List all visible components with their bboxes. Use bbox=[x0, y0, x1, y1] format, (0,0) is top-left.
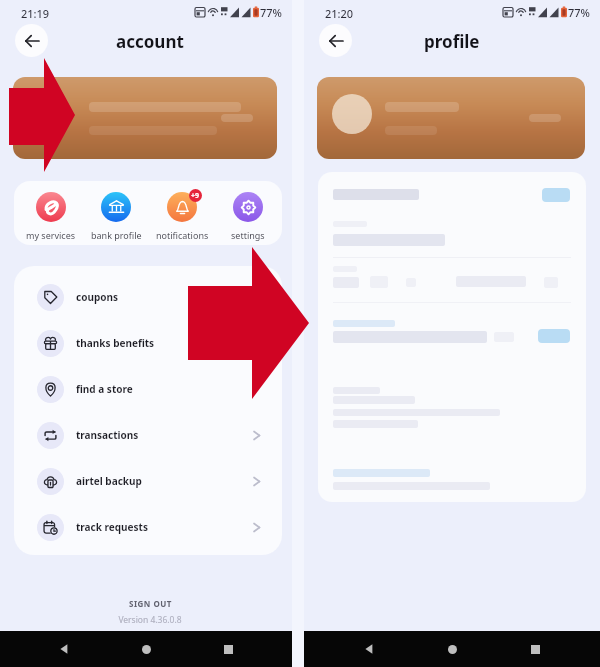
button[interactable] bbox=[13, 77, 277, 159]
button[interactable]: thanks benefits bbox=[14, 320, 282, 366]
button[interactable]: Back bbox=[351, 631, 387, 667]
staticText: 77% bbox=[260, 5, 282, 20]
button[interactable]: Back bbox=[46, 631, 82, 667]
staticText: my services bbox=[26, 229, 76, 241]
button[interactable]: track requests bbox=[14, 504, 282, 550]
button[interactable]: coupons bbox=[14, 274, 282, 320]
staticText: notifications bbox=[156, 229, 209, 241]
button[interactable]: find a store bbox=[14, 366, 282, 412]
staticText: track requests bbox=[76, 520, 148, 534]
staticText: coupons bbox=[76, 290, 118, 304]
button[interactable]: Back bbox=[15, 24, 48, 57]
button[interactable]: SIGN OUT bbox=[123, 597, 178, 610]
button[interactable]: Home bbox=[128, 631, 164, 667]
button[interactable]: my services bbox=[18, 181, 83, 245]
staticText: +9 bbox=[191, 191, 200, 201]
staticText: 21:19 bbox=[21, 6, 50, 21]
staticText: account bbox=[116, 30, 184, 53]
button[interactable]: transactions bbox=[14, 412, 282, 458]
staticText: Version 4.36.0.8 bbox=[118, 614, 182, 626]
staticText: profile bbox=[424, 30, 480, 53]
button[interactable]: bank profile bbox=[83, 181, 149, 245]
button[interactable]: +9 bbox=[149, 181, 215, 245]
button[interactable]: airtel backup bbox=[14, 458, 282, 504]
button[interactable] bbox=[317, 77, 585, 159]
staticText: thanks benefits bbox=[76, 336, 155, 350]
button[interactable]: Recents bbox=[210, 631, 246, 667]
button[interactable]: Back bbox=[319, 24, 352, 57]
staticText: SIGN OUT bbox=[129, 598, 172, 609]
staticText: 21:20 bbox=[325, 6, 354, 21]
staticText: bank profile bbox=[91, 229, 142, 241]
staticText: transactions bbox=[76, 428, 139, 442]
staticText: find a store bbox=[76, 382, 133, 396]
button[interactable]: Recents bbox=[517, 631, 553, 667]
staticText: settings bbox=[231, 229, 265, 241]
button[interactable]: settings bbox=[215, 181, 281, 245]
staticText: 77% bbox=[568, 5, 590, 20]
button[interactable]: Home bbox=[434, 631, 470, 667]
staticText: airtel backup bbox=[76, 474, 142, 488]
